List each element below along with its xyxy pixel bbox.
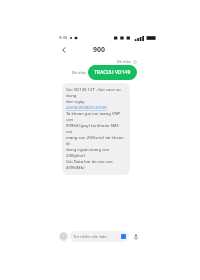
staticText: TRACUU VD149 xyxy=(94,69,131,76)
button[interactable]: TRACUU VD149 xyxy=(88,65,137,80)
staticText: Đã nhận xyxy=(72,70,86,75)
staticText: 900 xyxy=(93,45,106,55)
button[interactable]: Tin nhắn văn bản xyxy=(70,231,129,242)
button[interactable]: Goi VD149 12T : Goi cuoc su dung den nga… xyxy=(62,83,130,175)
staticText: Tin nhắn văn bản xyxy=(73,234,107,240)
staticText: Goi VD149 12T : Goi cuoc su dung den nga… xyxy=(66,87,126,171)
staticText: 9:30 xyxy=(59,35,67,40)
staticText: Đã nhận xyxy=(117,59,131,64)
button[interactable]: Back xyxy=(58,44,70,56)
other: Send xyxy=(121,234,126,239)
button[interactable]: Voice message xyxy=(131,232,140,241)
button[interactable]: Add attachment xyxy=(59,232,68,241)
